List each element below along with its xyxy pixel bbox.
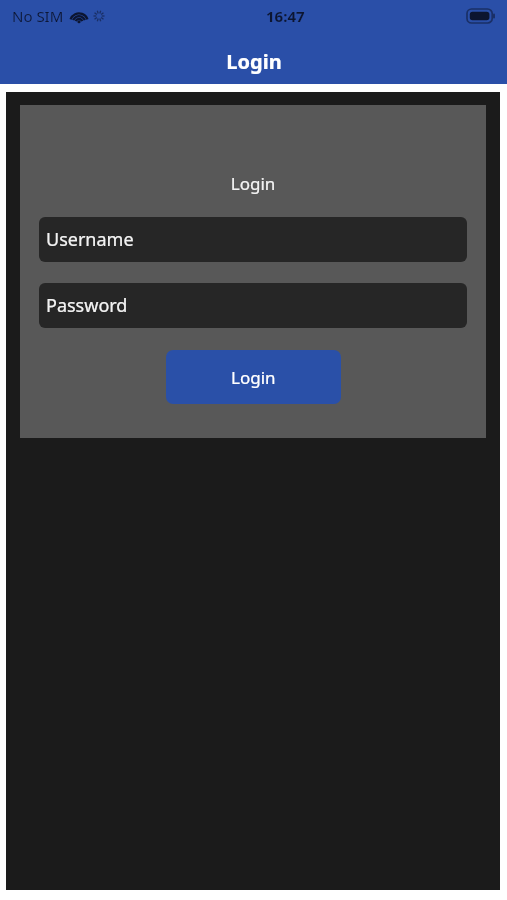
staticText: Password — [46, 293, 128, 318]
staticText: Login — [226, 48, 282, 75]
staticText: No SIM — [12, 6, 64, 26]
button[interactable]: Password — [39, 283, 467, 328]
staticText: 16:47 — [266, 6, 305, 26]
button[interactable]: Username — [39, 217, 467, 262]
staticText: Username — [46, 227, 134, 252]
button[interactable]: Login — [166, 350, 341, 404]
staticText: Login — [231, 366, 276, 389]
staticText: Login — [20, 172, 486, 195]
